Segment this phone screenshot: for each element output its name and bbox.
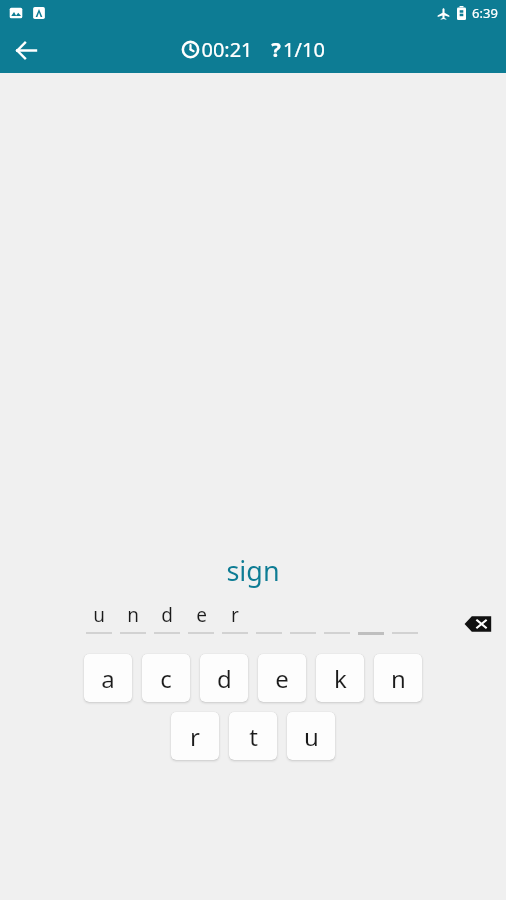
button[interactable]: n xyxy=(374,654,422,702)
staticText: u xyxy=(304,720,319,753)
staticText: u xyxy=(93,602,105,628)
staticText: 1/10 xyxy=(283,36,325,63)
staticText: d xyxy=(217,662,232,695)
button[interactable]: e xyxy=(258,654,306,702)
staticText: d xyxy=(161,602,173,628)
staticText: c xyxy=(160,662,172,695)
staticText: r xyxy=(231,602,239,628)
button[interactable]: k xyxy=(316,654,364,702)
button[interactable]: d xyxy=(200,654,248,702)
button[interactable]: t xyxy=(229,712,277,760)
staticText: e xyxy=(275,662,289,695)
staticText: ? xyxy=(271,36,281,63)
staticText: sign xyxy=(226,552,280,589)
button[interactable]: u xyxy=(287,712,335,760)
staticText: 00:21 xyxy=(201,36,253,63)
button[interactable]: Backspace xyxy=(458,604,498,644)
staticText: t xyxy=(249,720,258,753)
staticText: 6:39 xyxy=(472,4,498,22)
staticText: e xyxy=(196,602,207,628)
staticText: a xyxy=(101,662,115,695)
button[interactable]: r xyxy=(171,712,219,760)
staticText: n xyxy=(391,662,406,695)
button[interactable]: Back xyxy=(4,28,48,72)
staticText: n xyxy=(127,602,139,628)
button[interactable]: a xyxy=(84,654,132,702)
staticText: k xyxy=(334,662,347,695)
staticText: r xyxy=(190,720,200,753)
button[interactable]: c xyxy=(142,654,190,702)
